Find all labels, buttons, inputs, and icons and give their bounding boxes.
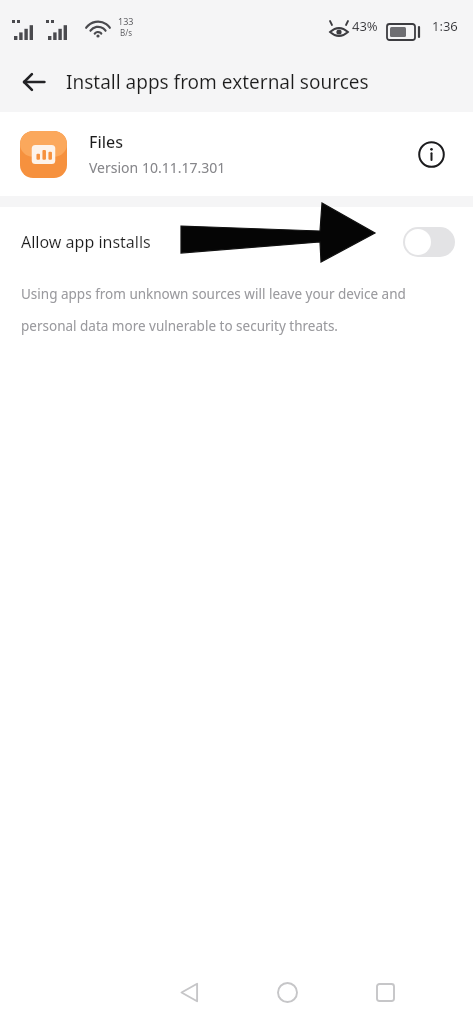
- button[interactable]: Files: [0, 112, 473, 196]
- staticText: 43%: [352, 17, 378, 35]
- button[interactable]: Recent apps: [358, 965, 412, 1019]
- button[interactable]: Back: [10, 58, 58, 106]
- staticText: Allow app installs: [21, 231, 151, 253]
- staticText: Version 10.11.17.301: [89, 158, 226, 177]
- staticText: 1:36: [432, 17, 458, 35]
- button[interactable]: Allow app installs: [0, 207, 473, 277]
- staticText: Files: [89, 131, 124, 153]
- staticText: B/s: [120, 27, 133, 38]
- button[interactable]: App info: [409, 132, 453, 176]
- button[interactable]: Back: [162, 965, 216, 1019]
- staticText: Install apps from external sources: [66, 69, 369, 95]
- staticText: 133: [118, 15, 134, 27]
- staticText: Using apps from unknown sources will lea…: [21, 285, 443, 335]
- button[interactable]: Home: [260, 965, 314, 1019]
